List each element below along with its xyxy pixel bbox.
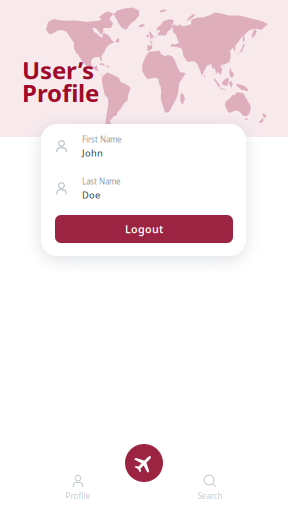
- staticText: First Name: [82, 134, 122, 145]
- staticText: Doe: [82, 189, 100, 201]
- button[interactable]: Flights: [125, 444, 163, 482]
- staticText: Profile: [22, 77, 99, 109]
- staticText: Search: [197, 491, 222, 501]
- button[interactable]: Search: [170, 471, 250, 505]
- staticText: Last Name: [82, 176, 121, 187]
- staticText: John: [82, 147, 103, 159]
- button[interactable]: Logout: [55, 215, 233, 243]
- staticText: Profile: [65, 491, 90, 501]
- button[interactable]: Profile: [38, 471, 118, 505]
- staticText: Logout: [125, 222, 163, 236]
- staticText: User’s: [22, 54, 94, 86]
